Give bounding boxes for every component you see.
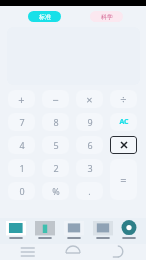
button[interactable]: . (76, 182, 103, 200)
button[interactable]: App 2 (63, 221, 85, 241)
button[interactable]: App 1 (34, 221, 56, 241)
staticText: 8 (53, 116, 59, 128)
staticText: ÷ (120, 92, 127, 107)
staticText: = (120, 172, 127, 187)
staticText: 9 (87, 116, 93, 128)
button[interactable]: 7 (8, 113, 35, 131)
button[interactable]: 3 (76, 159, 103, 177)
button[interactable]: 2 (42, 159, 69, 177)
staticText: 5 (53, 139, 59, 151)
button[interactable]: = (110, 159, 137, 200)
staticText: − (52, 92, 59, 107)
button[interactable]: AC (110, 113, 137, 131)
button[interactable]: 4 (8, 136, 35, 154)
button[interactable]: App 3 (92, 221, 114, 241)
staticText: 标准 (39, 13, 51, 21)
button[interactable]: + (8, 90, 35, 108)
staticText: + (18, 92, 25, 107)
button[interactable]: ÷ (110, 90, 137, 108)
button[interactable]: 9 (76, 113, 103, 131)
button[interactable]: 0 (8, 182, 35, 200)
staticText: 2 (53, 162, 59, 174)
staticText: × (86, 92, 93, 107)
button[interactable]: 5 (42, 136, 69, 154)
staticText: % (52, 185, 60, 197)
button[interactable]: 科学 (90, 11, 123, 22)
staticText: AC (119, 117, 129, 127)
staticText: 3 (87, 162, 93, 174)
button[interactable]: App 0 (5, 221, 27, 241)
button[interactable]: 8 (42, 113, 69, 131)
button[interactable]: 1 (8, 159, 35, 177)
button[interactable]: Backspace (110, 136, 137, 154)
staticText: 4 (19, 139, 25, 151)
staticText: 0 (19, 185, 25, 197)
staticText: 7 (19, 116, 25, 128)
staticText: 6 (87, 139, 93, 151)
button[interactable]: 6 (76, 136, 103, 154)
button[interactable]: × (76, 90, 103, 108)
staticText: 1 (19, 162, 25, 174)
staticText: . (88, 185, 91, 197)
staticText: 科学 (101, 13, 113, 21)
button[interactable]: 标准 (28, 11, 61, 22)
button[interactable]: App 4 (118, 221, 140, 241)
button[interactable]: % (42, 182, 69, 200)
button[interactable]: − (42, 90, 69, 108)
